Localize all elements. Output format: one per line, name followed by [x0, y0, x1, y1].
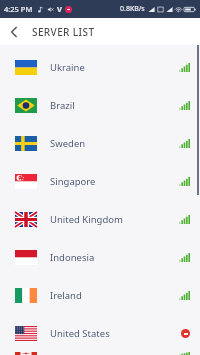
button[interactable]: Brazil	[0, 86, 200, 124]
staticText: Sweden	[50, 137, 86, 150]
staticText: 4:25 PM	[4, 4, 33, 14]
staticText: Indonesia	[50, 251, 95, 264]
staticText: Singapore	[50, 175, 96, 188]
button[interactable]: Sweden	[0, 124, 200, 162]
button[interactable]: Singapore	[0, 162, 200, 200]
staticText: United Kingdom	[50, 213, 123, 226]
staticText: United States	[50, 327, 110, 340]
button[interactable]: United States	[0, 314, 200, 352]
staticText: 0.8KB/s	[120, 4, 145, 14]
button[interactable]: Ireland	[0, 276, 200, 314]
staticText: Brazil	[50, 99, 75, 112]
staticText: Ukraine	[50, 61, 85, 74]
button[interactable]: Back	[0, 18, 27, 45]
button[interactable]: Indonesia	[0, 238, 200, 276]
staticText: Ireland	[50, 289, 82, 302]
button[interactable]: Ukraine	[0, 48, 200, 86]
button[interactable]: United Kingdom	[0, 200, 200, 238]
staticText: V	[57, 4, 62, 14]
staticText: SERVER LIST	[32, 25, 95, 39]
button[interactable]: Canada	[0, 352, 200, 355]
